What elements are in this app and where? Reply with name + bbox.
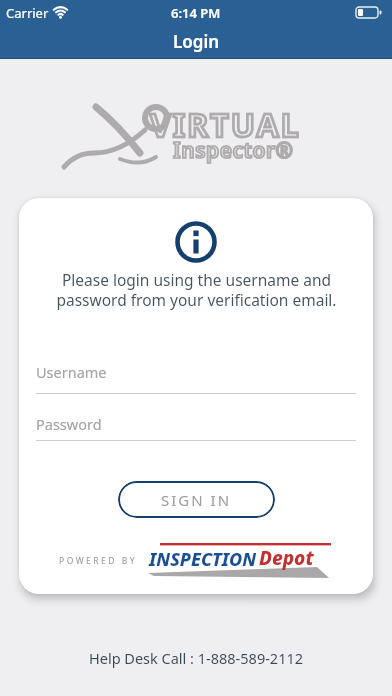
- staticText: Please login using the username and pass…: [56, 269, 337, 310]
- staticText: Depot: [259, 545, 314, 571]
- staticText: POWERED BY: [59, 555, 138, 567]
- staticText: Username: [36, 362, 107, 382]
- staticText: SIGN IN: [161, 490, 232, 510]
- button[interactable]: Username: [36, 362, 356, 394]
- staticText: VIRTUAL: [150, 103, 301, 147]
- staticText: Login: [173, 30, 220, 53]
- staticText: 6:14 PM: [171, 4, 221, 22]
- button[interactable]: Password: [36, 414, 356, 441]
- staticText: Carrier: [6, 4, 49, 22]
- staticText: Inspector®: [173, 136, 294, 165]
- button[interactable]: SIGN IN: [118, 481, 275, 518]
- button[interactable]: Help Desk Call : 1-888-589-2112: [89, 648, 304, 668]
- staticText: INSPECTION: [149, 547, 257, 572]
- staticText: Password: [36, 414, 102, 434]
